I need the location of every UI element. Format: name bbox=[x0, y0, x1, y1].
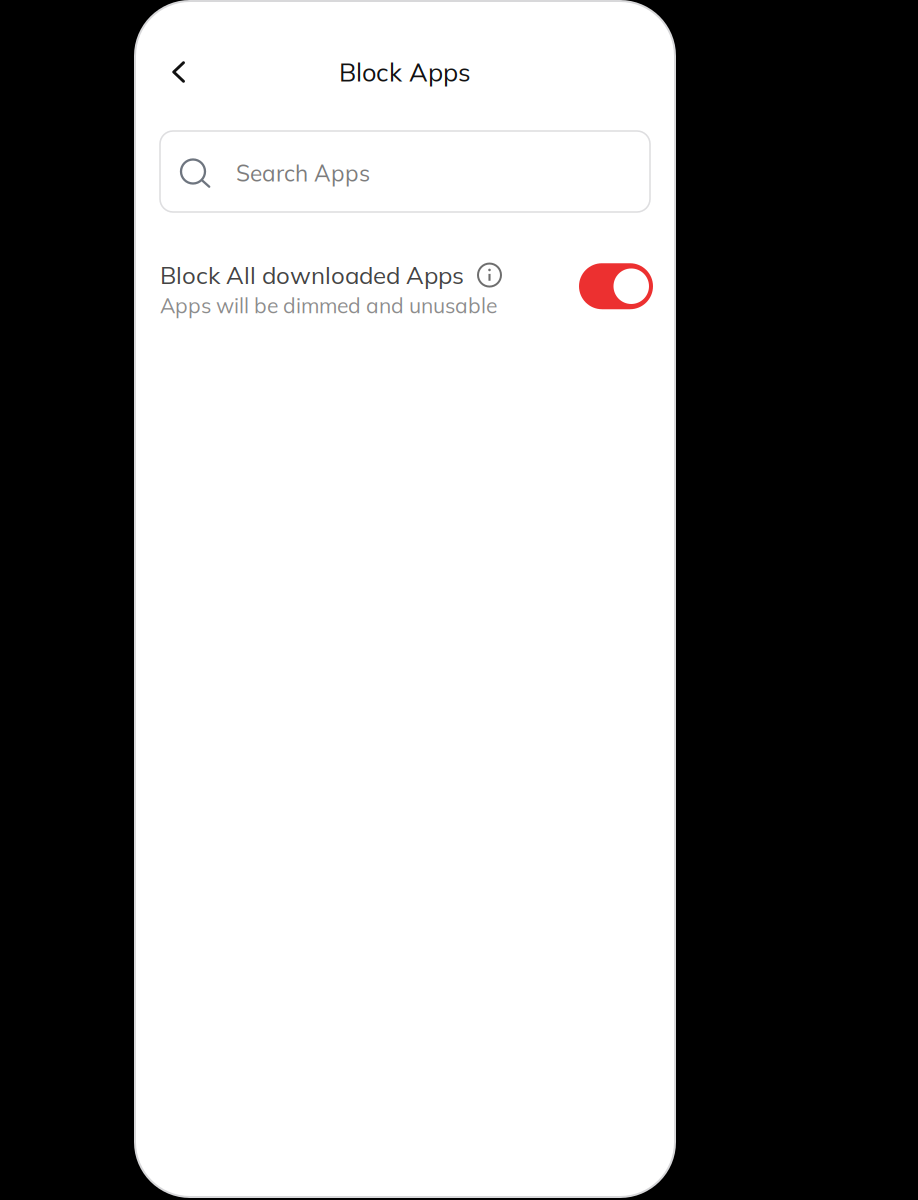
button[interactable]: Block all downloaded apps bbox=[579, 263, 653, 309]
button[interactable]: Back bbox=[160, 49, 197, 95]
staticText: Apps will be dimmed and unusable bbox=[160, 292, 497, 318]
staticText: Search Apps bbox=[236, 159, 370, 187]
button[interactable]: More information bbox=[478, 264, 501, 287]
button[interactable]: Search Apps bbox=[160, 131, 650, 212]
staticText: Block All downloaded Apps bbox=[160, 260, 464, 290]
staticText: Block Apps bbox=[339, 56, 471, 88]
